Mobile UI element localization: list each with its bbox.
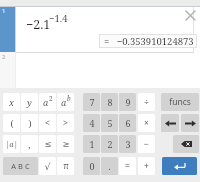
- staticText: −2.1: [26, 16, 51, 33]
- staticText: .: [108, 160, 111, 172]
- staticText: <: [45, 117, 50, 129]
- staticText: π: [63, 160, 69, 172]
- button[interactable]: 9: [119, 93, 136, 111]
- button[interactable]: √: [39, 157, 56, 175]
- staticText: √: [44, 161, 51, 172]
- staticText: = −0.353910124873: [104, 35, 194, 48]
- button[interactable]: (: [3, 114, 20, 132]
- button[interactable]: π: [57, 157, 74, 175]
- staticText: a: [61, 96, 67, 108]
- staticText: 6: [125, 117, 131, 129]
- staticText: x: [9, 96, 14, 108]
- button[interactable]: Move cursor right: [181, 114, 199, 132]
- staticText: >: [63, 117, 68, 129]
- button[interactable]: >: [57, 114, 74, 132]
- staticText: 1: [89, 138, 95, 150]
- staticText: funcs: [169, 96, 191, 108]
- staticText: ≤: [44, 139, 52, 149]
- button[interactable]: .: [101, 157, 118, 175]
- button[interactable]: Move cursor left: [161, 114, 179, 132]
- staticText: a: [43, 96, 49, 108]
- staticText: 5: [107, 117, 113, 129]
- staticText: b: [67, 94, 71, 103]
- button[interactable]: 5: [101, 114, 118, 132]
- staticText: =: [125, 160, 130, 172]
- button[interactable]: 3: [119, 135, 136, 153]
- button[interactable]: ,: [21, 135, 38, 153]
- button[interactable]: funcs: [161, 93, 199, 111]
- staticText: −: [144, 138, 149, 150]
- button[interactable]: 4: [83, 114, 100, 132]
- button[interactable]: A B C: [3, 157, 38, 175]
- button[interactable]: |a|: [3, 135, 20, 153]
- staticText: 2: [49, 94, 53, 103]
- staticText: ÷: [144, 96, 149, 108]
- staticText: 1: [2, 7, 6, 15]
- button[interactable]: Enter: [162, 157, 197, 175]
- staticText: 3: [125, 138, 131, 150]
- button[interactable]: Close: [183, 8, 197, 22]
- button[interactable]: ×: [138, 114, 155, 132]
- staticText: ): [28, 117, 32, 129]
- staticText: 0: [89, 160, 95, 172]
- button[interactable]: x: [3, 93, 20, 111]
- button[interactable]: =: [119, 157, 136, 175]
- button[interactable]: ): [21, 114, 38, 132]
- button[interactable]: 8: [101, 93, 118, 111]
- button[interactable]: Backspace: [173, 135, 199, 153]
- button[interactable]: ÷: [138, 93, 155, 111]
- staticText: −1.4: [49, 12, 68, 25]
- staticText: (: [10, 117, 14, 129]
- button[interactable]: 7: [83, 93, 100, 111]
- button[interactable]: y: [21, 93, 38, 111]
- button[interactable]: +: [138, 157, 155, 175]
- staticText: 7: [89, 96, 95, 108]
- button[interactable]: ≤: [39, 135, 56, 153]
- staticText: A B C: [11, 161, 30, 171]
- button[interactable]: ≥: [57, 135, 74, 153]
- staticText: 2: [107, 138, 113, 150]
- button[interactable]: a: [39, 93, 56, 111]
- staticText: 9: [125, 96, 131, 108]
- button[interactable]: 6: [119, 114, 136, 132]
- staticText: 2: [2, 53, 6, 61]
- staticText: y: [27, 96, 32, 108]
- button[interactable]: −: [138, 135, 155, 153]
- button[interactable]: <: [39, 114, 56, 132]
- staticText: ,: [28, 138, 31, 150]
- staticText: ≥: [62, 139, 70, 149]
- button[interactable]: 2: [101, 135, 118, 153]
- staticText: 4: [89, 117, 95, 129]
- staticText: |a|: [5, 139, 18, 149]
- staticText: ×: [144, 117, 149, 129]
- button[interactable]: 1: [83, 135, 100, 153]
- button[interactable]: a: [57, 93, 74, 111]
- staticText: +: [144, 160, 149, 172]
- staticText: 8: [107, 96, 113, 108]
- button[interactable]: 0: [83, 157, 100, 175]
